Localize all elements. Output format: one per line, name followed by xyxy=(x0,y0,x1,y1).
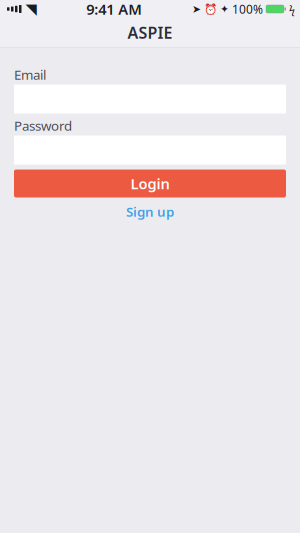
staticText: ➤ xyxy=(192,3,201,15)
staticText: ASPIE xyxy=(127,22,172,43)
staticText: Password xyxy=(14,117,72,134)
staticText: ϟ xyxy=(289,2,295,16)
staticText: Sign up xyxy=(126,203,174,220)
staticText: ⏰ xyxy=(204,3,217,15)
staticText: Login xyxy=(130,174,169,193)
staticText: Email xyxy=(14,66,46,83)
staticText: ✦ xyxy=(220,3,229,15)
button[interactable]: Login xyxy=(14,169,286,197)
staticText: 9:41 AM xyxy=(86,0,142,19)
staticText: ◥ xyxy=(25,1,36,17)
button[interactable]: Sign up xyxy=(14,202,286,220)
staticText: 100% xyxy=(232,1,263,17)
